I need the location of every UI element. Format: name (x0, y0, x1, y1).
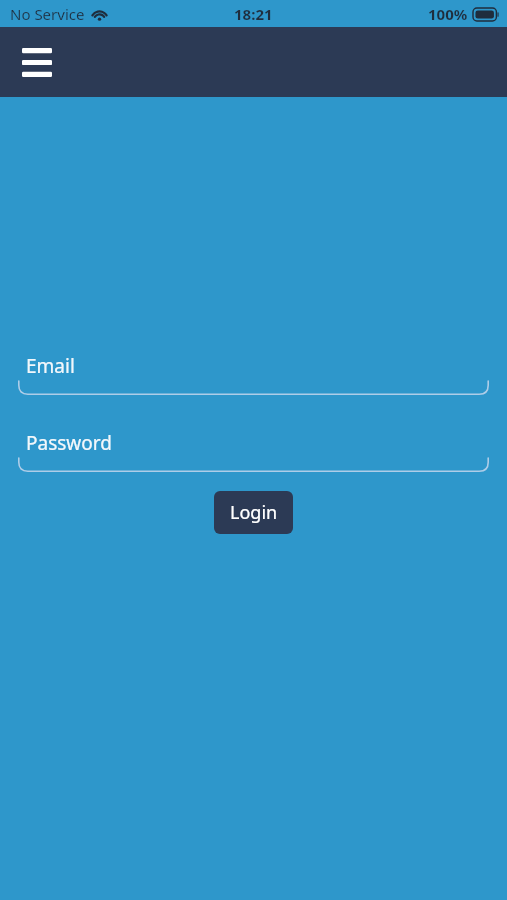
button[interactable]: Open navigation menu (22, 42, 66, 82)
staticText: Password (26, 430, 112, 456)
staticText: Email (26, 353, 75, 379)
staticText: 18:21 (234, 4, 273, 24)
button[interactable]: Email (18, 350, 489, 395)
button[interactable]: Password (18, 427, 489, 472)
staticText: 100% (428, 4, 468, 24)
staticText: Login (230, 500, 278, 525)
button[interactable]: Login (214, 491, 293, 534)
staticText: No Service (10, 4, 85, 24)
